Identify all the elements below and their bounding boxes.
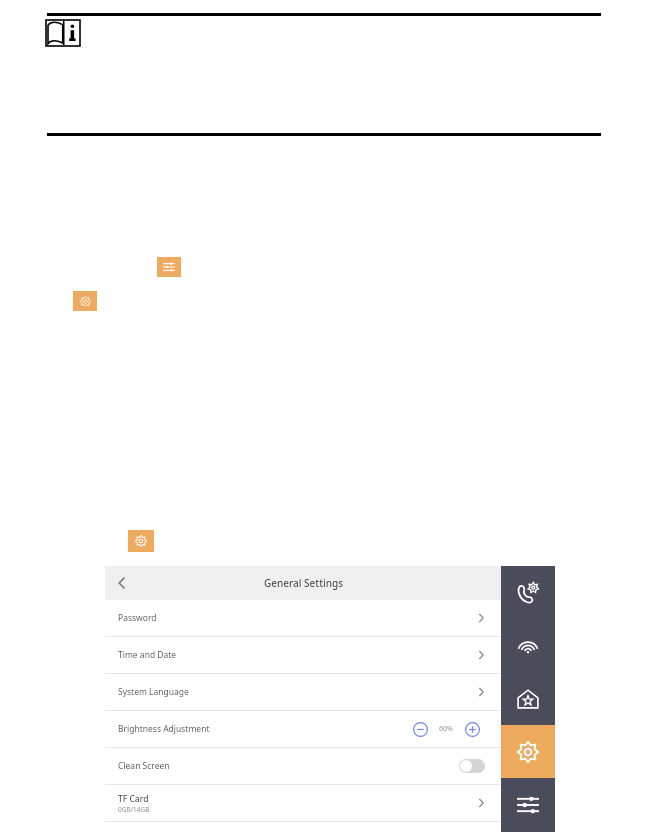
button[interactable]: Clean Screen toggle [459,759,485,773]
button[interactable]: TF Card [105,785,501,821]
button[interactable]: Network [501,619,555,672]
button[interactable] [128,530,154,552]
button[interactable]: Call settings [501,566,555,619]
button[interactable]: Settings [501,725,555,778]
button[interactable]: Increase brightness [461,718,483,740]
staticText: TF Card [118,793,149,805]
button[interactable]: Home [501,672,555,725]
staticText: System Language [118,686,189,698]
staticText: Clean Screen [118,760,170,772]
button[interactable] [73,291,97,311]
button[interactable] [157,257,181,277]
button[interactable]: Brightness Adjustment [105,711,501,747]
button[interactable]: Decrease brightness [409,718,431,740]
staticText: 60% [439,724,453,734]
staticText: General Settings [264,576,343,590]
staticText: Time and Date [118,649,177,661]
staticText: Brightness Adjustment [118,723,210,735]
staticText: Password [118,612,157,624]
button[interactable]: Back [105,566,139,600]
staticText: 0GB/14GB [118,805,150,814]
button[interactable]: Time and Date [105,637,501,673]
button[interactable]: Password [105,600,501,636]
button[interactable]: System Language [105,674,501,710]
button[interactable]: Preferences [501,778,555,831]
button[interactable]: Clean Screen [105,748,501,784]
